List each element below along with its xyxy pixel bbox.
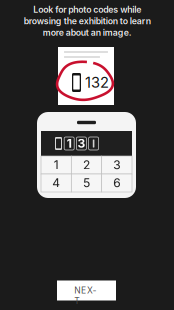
staticText: 1 <box>54 158 59 172</box>
staticText: 6 <box>113 176 120 190</box>
button[interactable]: 5 <box>71 174 102 192</box>
button[interactable]: 1 <box>41 156 71 174</box>
staticText: 2 <box>83 158 90 172</box>
button[interactable]: 4 <box>41 174 71 192</box>
button[interactable]: 2 <box>71 156 102 174</box>
staticText: NEXT <box>74 285 99 296</box>
staticText: 3 <box>77 136 85 151</box>
staticText: 132 <box>85 74 109 91</box>
staticText: 3 <box>113 158 120 172</box>
button[interactable]: NEXT <box>57 280 116 300</box>
button[interactable]: 6 <box>102 174 132 192</box>
staticText: 5 <box>83 176 90 190</box>
staticText: 1 <box>67 136 72 151</box>
staticText: 4 <box>52 176 60 190</box>
button[interactable]: 3 <box>102 156 132 174</box>
staticText: Look for photo codes while browsing the … <box>23 4 150 38</box>
